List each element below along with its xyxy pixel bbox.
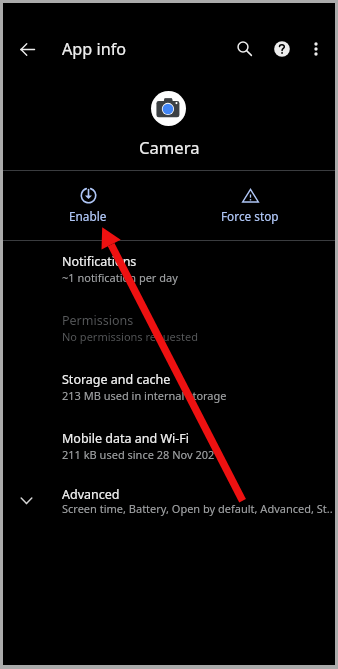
staticText: Screen time, Battery, Open by default, A… (62, 501, 333, 516)
staticText: Storage and cache (62, 371, 171, 388)
staticText: ~1 notification per day (62, 270, 178, 285)
staticText: Notifications (62, 253, 137, 270)
staticText: Enable (69, 208, 107, 224)
button[interactable]: Search (228, 32, 260, 64)
button[interactable]: Notifications (3, 241, 335, 300)
staticText: Mobile data and Wi-Fi (62, 430, 190, 447)
staticText: No permissions requested (62, 329, 198, 344)
staticText: 211 kB used since 28 Nov 2021 (62, 447, 221, 462)
staticText: Force stop (221, 208, 279, 224)
button[interactable]: Mobile data and Wi-Fi (3, 418, 335, 477)
button[interactable]: Enable (3, 171, 169, 240)
staticText: Camera (139, 136, 200, 159)
button[interactable]: Advanced (3, 477, 335, 533)
button[interactable]: Force stop (169, 171, 335, 240)
button[interactable]: More options (300, 33, 332, 65)
button[interactable]: Help (266, 33, 298, 65)
button[interactable]: Back (11, 33, 43, 65)
staticText: 213 MB used in internal storage (62, 388, 227, 403)
button[interactable]: Permissions (3, 300, 335, 359)
button[interactable]: Storage and cache (3, 359, 335, 418)
staticText: Advanced (62, 486, 120, 503)
staticText: Permissions (62, 312, 134, 329)
staticText: App info (62, 38, 127, 60)
